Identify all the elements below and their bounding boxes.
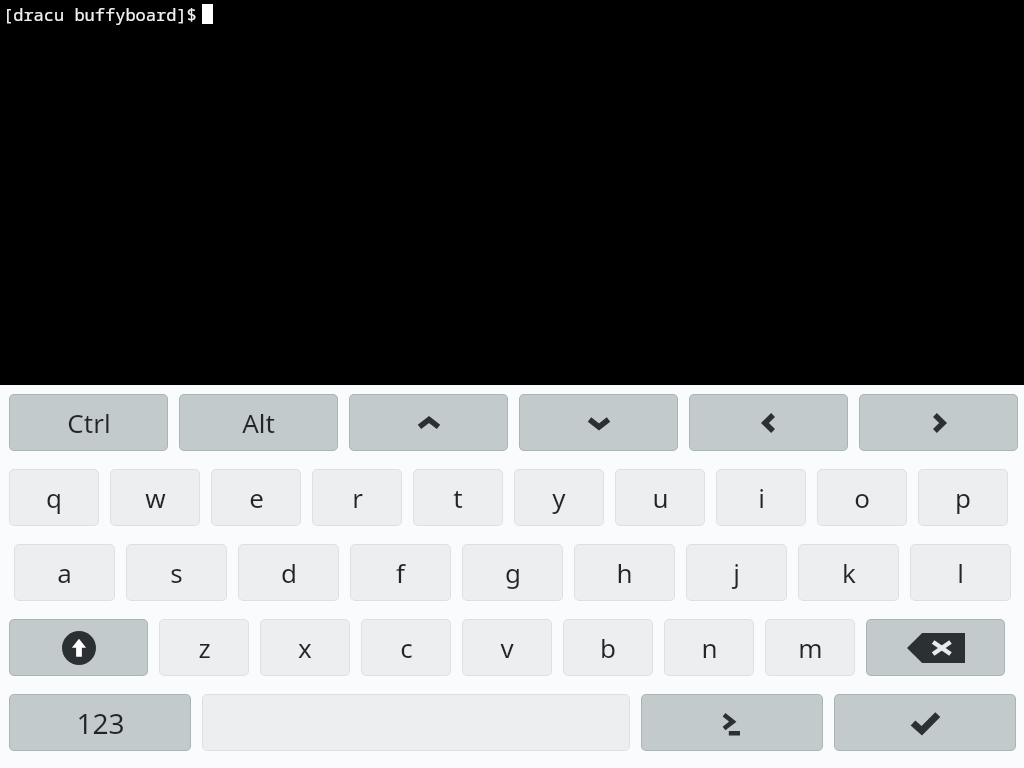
- button[interactable]: y: [514, 469, 604, 526]
- staticText: f: [396, 555, 405, 590]
- button[interactable]: Alt: [179, 394, 338, 451]
- button[interactable]: q: [9, 469, 99, 526]
- staticText: 123: [76, 704, 125, 742]
- staticText: k: [842, 555, 856, 590]
- staticText: h: [616, 555, 633, 590]
- staticText: l: [957, 555, 964, 590]
- staticText: c: [400, 630, 413, 665]
- button[interactable]: Shift: [9, 619, 148, 676]
- button[interactable]: i: [716, 469, 806, 526]
- staticText: s: [170, 555, 183, 590]
- button[interactable]: v: [462, 619, 552, 676]
- staticText: Ctrl: [67, 405, 111, 440]
- staticText: x: [298, 630, 312, 665]
- button[interactable]: Down: [519, 394, 678, 451]
- staticText: i: [758, 480, 765, 515]
- button[interactable]: f: [350, 544, 451, 601]
- staticText: d: [281, 555, 297, 590]
- staticText: t: [453, 480, 463, 515]
- staticText: r: [352, 480, 363, 515]
- button[interactable]: Backspace: [866, 619, 1005, 676]
- staticText: z: [198, 630, 211, 665]
- button[interactable]: e: [211, 469, 301, 526]
- staticText: v: [500, 630, 514, 665]
- staticText: e: [249, 480, 264, 515]
- staticText: b: [600, 630, 616, 665]
- button[interactable]: r: [312, 469, 402, 526]
- staticText: m: [798, 630, 823, 665]
- button[interactable]: k: [798, 544, 899, 601]
- button[interactable]: 123: [9, 694, 191, 751]
- button[interactable]: s: [126, 544, 227, 601]
- staticText: p: [955, 480, 971, 515]
- button[interactable]: d: [238, 544, 339, 601]
- button[interactable]: j: [686, 544, 787, 601]
- staticText: g: [505, 555, 521, 590]
- button[interactable]: n: [664, 619, 754, 676]
- button[interactable]: b: [563, 619, 653, 676]
- button[interactable]: a: [14, 544, 115, 601]
- button[interactable]: o: [817, 469, 907, 526]
- button[interactable]: p: [918, 469, 1008, 526]
- button[interactable]: x: [260, 619, 350, 676]
- staticText: j: [733, 555, 740, 590]
- staticText: y: [552, 480, 566, 515]
- button[interactable]: Up: [349, 394, 508, 451]
- staticText: n: [701, 630, 718, 665]
- button[interactable]: m: [765, 619, 855, 676]
- staticText: [dracu buffyboard]$: [3, 3, 207, 26]
- staticText: a: [57, 555, 72, 590]
- button[interactable]: Enter: [834, 694, 1016, 751]
- button[interactable]: w: [110, 469, 200, 526]
- button[interactable]: c: [361, 619, 451, 676]
- button[interactable]: [202, 694, 630, 751]
- button[interactable]: h: [574, 544, 675, 601]
- button[interactable]: l: [910, 544, 1011, 601]
- button[interactable]: Ctrl: [9, 394, 168, 451]
- button[interactable]: Right: [859, 394, 1018, 451]
- staticText: Alt: [242, 405, 275, 440]
- staticText: q: [46, 480, 62, 515]
- button[interactable]: u: [615, 469, 705, 526]
- staticText: u: [652, 480, 669, 515]
- staticText: w: [145, 480, 166, 515]
- button[interactable]: t: [413, 469, 503, 526]
- staticText: o: [854, 480, 870, 515]
- button[interactable]: Left: [689, 394, 848, 451]
- button[interactable]: g: [462, 544, 563, 601]
- button[interactable]: z: [159, 619, 249, 676]
- button[interactable]: Terminal symbols: [641, 694, 823, 751]
